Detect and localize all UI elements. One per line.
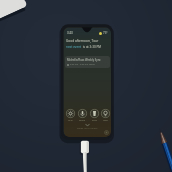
staticText: Wi-Fi — [68, 119, 73, 122]
button[interactable]: Camera — [104, 130, 109, 135]
staticText: 3:23 — [67, 31, 73, 35]
button[interactable]: Michelle/Russ Weekly Sync — [65, 56, 110, 68]
staticText: Good afternoon, Tour — [66, 39, 99, 43]
staticText: Light — [103, 119, 108, 122]
staticText: is at 3:30 PM — [82, 45, 102, 49]
button[interactable]: Flash — [88, 109, 100, 122]
staticText: next event — [66, 45, 82, 49]
staticText: Sound — [79, 119, 86, 122]
staticText: 73° — [103, 31, 108, 35]
button[interactable]: Sound — [76, 109, 88, 122]
staticText: Swipe up to unlock — [77, 127, 98, 130]
staticText: Flash — [92, 119, 97, 122]
staticText: Michelle/Russ Weekly Sync — [67, 58, 101, 62]
button[interactable]: Light — [100, 109, 111, 122]
button[interactable]: Wi-Fi — [64, 109, 76, 122]
staticText: 3:30 PM · 3:30 PM Today — [70, 63, 95, 66]
